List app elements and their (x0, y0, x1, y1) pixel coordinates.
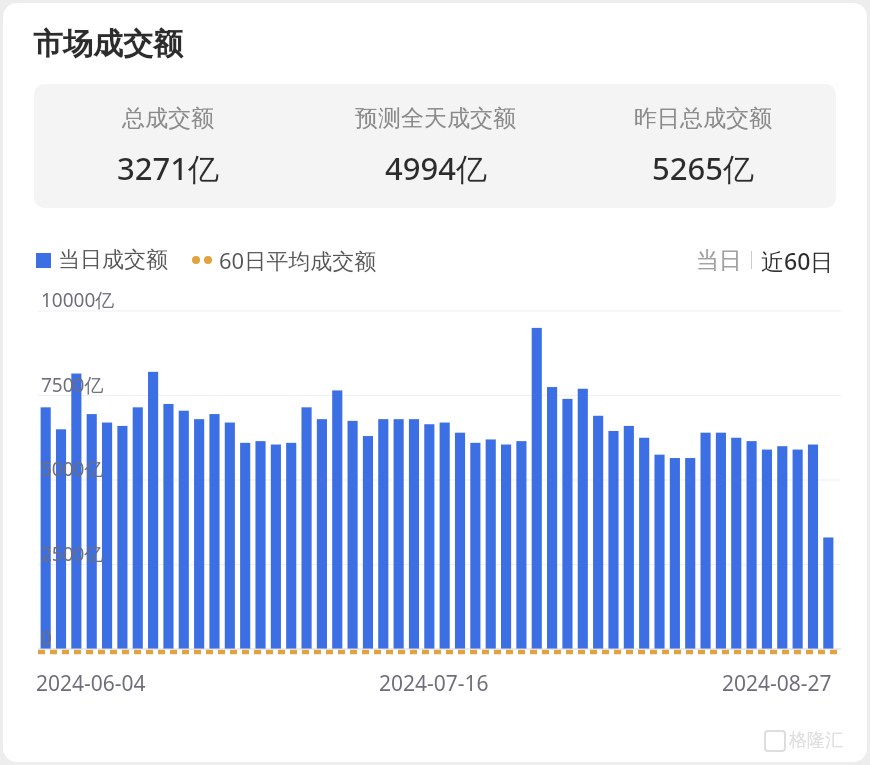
button[interactable]: 当日 (696, 246, 742, 275)
button[interactable]: 昨日总成交额 (569, 84, 836, 208)
staticText: 预测全天成交额 (355, 104, 516, 133)
button[interactable]: 近60日 (761, 245, 834, 275)
button[interactable]: 预测全天成交额 (302, 84, 569, 208)
staticText: 5000亿 (41, 456, 104, 482)
staticText: 2500亿 (41, 541, 104, 567)
staticText: 5265亿 (652, 147, 754, 189)
staticText: 格隆汇 (789, 729, 843, 752)
staticText: 2024-08-27 (722, 669, 832, 698)
staticText: 2024-07-16 (379, 669, 489, 698)
staticText: 昨日总成交额 (634, 104, 772, 133)
button[interactable]: 成交额柱状图 (3, 297, 867, 669)
staticText: 总成交额 (122, 104, 214, 133)
staticText: 市场成交额 (33, 25, 183, 63)
button[interactable]: 60日平均成交额 (192, 245, 377, 275)
staticText: 7500亿 (41, 372, 104, 398)
staticText: 0 (41, 625, 52, 651)
staticText: 60日平均成交额 (219, 245, 377, 275)
staticText: 3271亿 (117, 147, 219, 189)
button[interactable]: 当日成交额 (36, 246, 168, 274)
staticText: 当日成交额 (58, 246, 168, 274)
staticText: 2024-06-04 (36, 669, 146, 698)
staticText: 4994亿 (385, 147, 487, 189)
staticText: 10000亿 (41, 287, 115, 313)
button[interactable]: 总成交额 (34, 84, 302, 208)
